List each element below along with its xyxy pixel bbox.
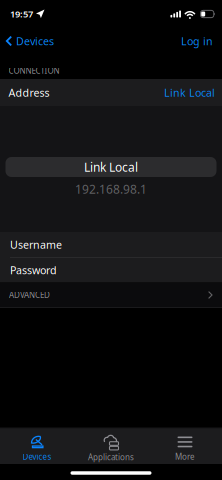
button[interactable]: Devices (0, 28, 62, 54)
staticText: ADVANCED (9, 290, 50, 300)
staticText: Password (10, 263, 57, 277)
staticText: Log in (181, 34, 213, 48)
button[interactable]: More (148, 430, 222, 466)
staticText: Link Local (164, 85, 215, 100)
staticText: CONNECTION (8, 65, 59, 76)
staticText: Address (8, 85, 49, 100)
staticText: 192.168.98.1 (75, 181, 147, 197)
staticText: Applications (88, 452, 134, 462)
button[interactable]: Address (0, 79, 222, 106)
button[interactable]: Log in (172, 28, 222, 54)
staticText: Devices (16, 34, 54, 48)
staticText: Link Local (84, 159, 138, 175)
staticText: More (175, 451, 195, 462)
staticText: Username (10, 237, 62, 252)
button[interactable]: ADVANCED (0, 282, 222, 308)
button[interactable]: Devices (0, 430, 74, 466)
staticText: Devices (22, 451, 51, 462)
staticText: 19:57 (10, 8, 33, 20)
button[interactable]: Applications (74, 430, 148, 466)
